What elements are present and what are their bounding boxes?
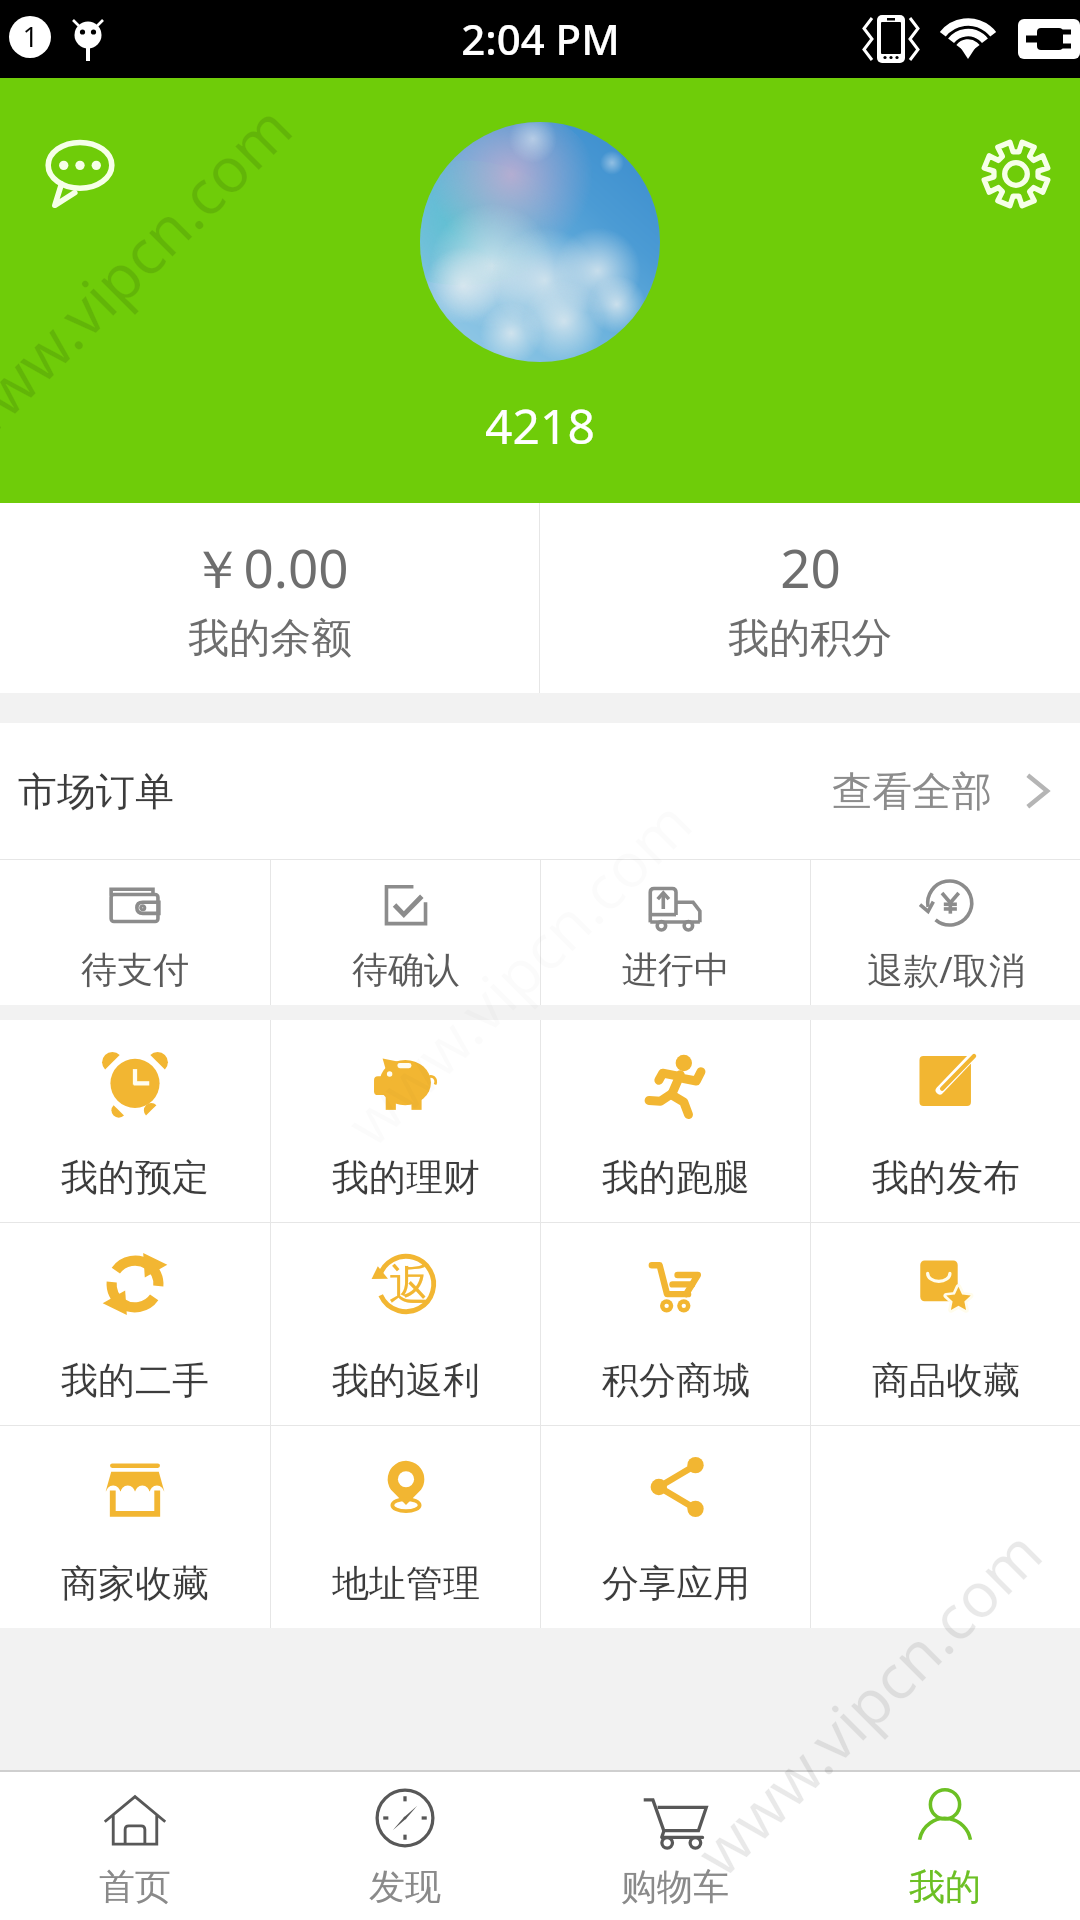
- staticText: 购物车: [621, 1864, 729, 1909]
- button[interactable]: 积分商城: [541, 1223, 810, 1425]
- staticText: 我的积分: [728, 613, 892, 665]
- staticText: 20: [780, 531, 841, 603]
- button[interactable]: 我的: [810, 1772, 1080, 1920]
- staticText: 退款/取消: [867, 945, 1025, 994]
- staticText: www.vipcn.com: [677, 1511, 1059, 1893]
- staticText: 待确认: [352, 947, 460, 992]
- button[interactable]: 退款/取消: [811, 860, 1080, 1005]
- staticText: 我的: [909, 1864, 981, 1909]
- staticText: 我的余额: [188, 613, 352, 665]
- staticText: 商家收藏: [61, 1560, 209, 1607]
- button[interactable]: 分享应用: [541, 1426, 810, 1628]
- staticText: 返: [389, 1259, 431, 1312]
- staticText: 发现: [369, 1864, 441, 1909]
- button[interactable]: 我的跑腿: [541, 1020, 810, 1222]
- button[interactable]: Messages: [30, 122, 130, 222]
- button[interactable]: 首页: [0, 1772, 270, 1920]
- button[interactable]: ￥0.00: [0, 503, 539, 693]
- staticText: 2:04 PM: [461, 10, 620, 67]
- staticText: 进行中: [622, 947, 730, 992]
- staticText: 积分商城: [602, 1357, 750, 1404]
- staticText: www.vipcn.com: [327, 781, 709, 1163]
- staticText: www.vipcn.com: [0, 86, 309, 468]
- button[interactable]: Settings: [966, 124, 1066, 224]
- staticText: 待支付: [81, 947, 189, 992]
- staticText: 查看全部: [832, 766, 992, 816]
- staticText: 商品收藏: [872, 1357, 1020, 1404]
- button[interactable]: 地址管理: [271, 1426, 540, 1628]
- staticText: 1: [22, 17, 39, 55]
- button[interactable]: 我的二手: [0, 1223, 270, 1425]
- button[interactable]: Avatar: [420, 122, 660, 362]
- staticText: 我的二手: [61, 1357, 209, 1404]
- staticText: 我的理财: [332, 1154, 480, 1201]
- staticText: 地址管理: [332, 1560, 480, 1607]
- staticText: 我的发布: [872, 1154, 1020, 1201]
- staticText: 我的预定: [61, 1154, 209, 1201]
- button[interactable]: 市场订单: [0, 723, 1080, 859]
- staticText: 首页: [99, 1864, 171, 1909]
- button[interactable]: 我的理财: [271, 1020, 540, 1222]
- staticText: 4218: [485, 393, 595, 458]
- button[interactable]: 购物车: [540, 1772, 810, 1920]
- button[interactable]: 返: [271, 1223, 540, 1425]
- staticText: 我的跑腿: [602, 1154, 750, 1201]
- staticText: 分享应用: [602, 1560, 750, 1607]
- button[interactable]: 我的预定: [0, 1020, 270, 1222]
- button[interactable]: 待支付: [0, 860, 270, 1005]
- button[interactable]: 发现: [270, 1772, 540, 1920]
- button[interactable]: 待确认: [271, 860, 540, 1005]
- button[interactable]: 我的发布: [811, 1020, 1080, 1222]
- button[interactable]: 20: [540, 503, 1080, 693]
- staticText: 我的返利: [332, 1357, 480, 1404]
- button[interactable]: 进行中: [541, 860, 810, 1005]
- staticText: ￥0.00: [190, 531, 349, 603]
- button[interactable]: 商家收藏: [0, 1426, 270, 1628]
- staticText: 市场订单: [18, 767, 174, 816]
- button[interactable]: 商品收藏: [811, 1223, 1080, 1425]
